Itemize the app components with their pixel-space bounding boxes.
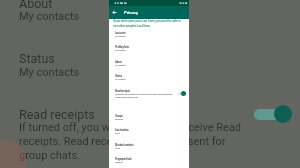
staticText: Privacy [124, 10, 139, 15]
staticText: group chats. [19, 149, 81, 162]
staticText: Status [19, 51, 55, 66]
staticText: Blocked contacts [115, 143, 134, 146]
staticText: None [115, 132, 120, 135]
staticText: If turned off, you will not send or rece… [19, 121, 242, 134]
staticText: My contacts [19, 66, 80, 79]
staticText: Live location [115, 128, 129, 131]
button[interactable]: Fingerprint lock [109, 156, 189, 168]
button[interactable]: Profile photo [109, 44, 189, 58]
staticText: Read receipts [19, 107, 95, 122]
button[interactable]: Blocked contacts [109, 142, 189, 156]
button[interactable]: About [109, 59, 189, 73]
button[interactable]: Groups [109, 113, 189, 127]
staticText: My contacts [19, 10, 80, 23]
staticText: About [115, 60, 122, 63]
staticText: None [115, 147, 120, 150]
staticText: Status [115, 74, 122, 77]
staticText: My contacts [115, 64, 126, 67]
staticText: My contacts [115, 78, 126, 81]
button[interactable]: Status [109, 73, 189, 87]
staticText: If turned off, you won't send or receive… [115, 93, 177, 99]
button[interactable]: Live location [109, 127, 189, 141]
staticText: My contacts [115, 35, 126, 38]
staticText: Fingerprint lock [115, 157, 132, 160]
staticText: My contacts [115, 49, 126, 52]
staticText: Groups [115, 114, 123, 117]
staticText: Last seen [115, 31, 126, 34]
staticText: receipts. Read receipts are always sent … [19, 135, 226, 148]
staticText: If you don't share your Last Seen, you w… [113, 19, 184, 27]
button[interactable]: Back [109, 6, 120, 19]
staticText: Everyone [115, 118, 123, 121]
staticText: Profile photo [115, 45, 129, 48]
button[interactable]: Last seen [109, 30, 189, 44]
staticText: Disabled [115, 161, 123, 164]
staticText: About [19, 0, 53, 11]
staticText: Read receipts [115, 89, 130, 92]
button[interactable]: Read receipts [109, 88, 189, 113]
